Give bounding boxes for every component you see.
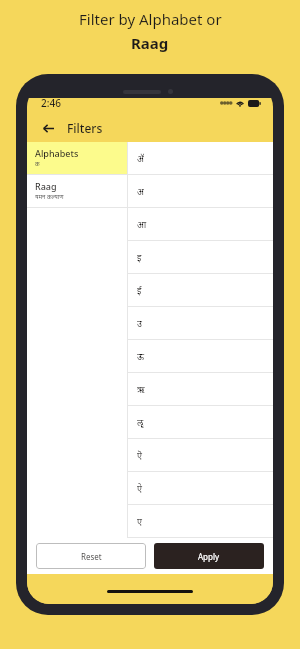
button[interactable]: ॡ	[128, 406, 273, 438]
staticText: Raag	[131, 33, 169, 53]
button[interactable]: Back	[37, 117, 59, 139]
staticText: इ	[137, 251, 142, 263]
staticText: Apply	[198, 551, 220, 562]
button[interactable]: ई	[128, 274, 273, 306]
staticText: ऊ	[137, 350, 145, 362]
staticText: ऋ	[137, 383, 145, 395]
staticText: Filters	[67, 120, 103, 136]
button[interactable]: अ	[128, 175, 273, 207]
staticText: ए	[137, 515, 142, 527]
button[interactable]: उ	[128, 307, 273, 339]
staticText: क	[35, 160, 40, 168]
staticText: Reset	[81, 551, 102, 562]
button[interactable]: ऊ	[128, 340, 273, 372]
staticText: ऎ	[137, 449, 142, 461]
button[interactable]: ॲ	[128, 142, 273, 174]
staticText: यमन कल्याण	[35, 193, 64, 201]
button[interactable]: आ	[128, 208, 273, 240]
staticText: ॲ	[137, 152, 144, 164]
staticText: ऐ	[137, 482, 142, 494]
staticText: ई	[137, 284, 142, 296]
button[interactable]: ऐ	[128, 472, 273, 504]
staticText: ॡ	[137, 416, 144, 428]
button[interactable]: Raag	[27, 175, 127, 207]
staticText: 2:46	[41, 96, 61, 110]
staticText: उ	[137, 317, 142, 329]
button[interactable]: ए	[128, 505, 273, 537]
button[interactable]: Alphabets	[27, 142, 127, 174]
button[interactable]: Apply	[154, 543, 264, 569]
staticText: अ	[137, 185, 144, 197]
button[interactable]: ऋ	[128, 373, 273, 405]
button[interactable]: Reset	[36, 543, 146, 569]
staticText: आ	[137, 218, 147, 230]
staticText: Raag	[35, 180, 57, 192]
button[interactable]: इ	[128, 241, 273, 273]
staticText: Alphabets	[35, 147, 79, 159]
button[interactable]: ऎ	[128, 439, 273, 471]
staticText: Filter by Alphabet or	[79, 9, 222, 29]
